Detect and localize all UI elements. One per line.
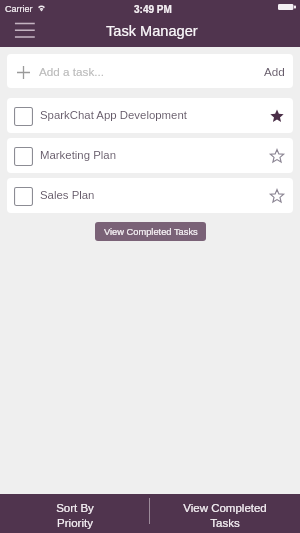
- button[interactable]: Add: [253, 54, 293, 88]
- staticText: Carrier: [5, 4, 33, 14]
- button[interactable]: Toggle task complete: [14, 107, 33, 126]
- button[interactable]: View Completed Tasks: [150, 494, 300, 533]
- button[interactable]: Open navigation menu: [9, 18, 40, 42]
- staticText: View Completed Tasks: [183, 502, 267, 529]
- button[interactable]: Toggle task complete: [7, 98, 293, 133]
- button[interactable]: Mark as priority: [268, 187, 286, 205]
- button[interactable]: Toggle task complete: [14, 187, 33, 206]
- button[interactable]: Sort By Priority: [0, 494, 149, 533]
- staticText: Task Manager: [106, 23, 198, 39]
- button[interactable]: Unmark as priority: [268, 107, 286, 125]
- staticText: Add: [264, 65, 285, 78]
- button[interactable]: Toggle task complete: [7, 178, 293, 213]
- staticText: Sort By Priority: [56, 502, 94, 529]
- button[interactable]: Toggle task complete: [14, 147, 33, 166]
- button[interactable]: Mark as priority: [268, 147, 286, 165]
- staticText: SparkChat App Development: [40, 109, 187, 122]
- button[interactable]: Add task: [17, 66, 30, 79]
- staticText: Sales Plan: [40, 189, 95, 202]
- staticText: Add a task...: [39, 65, 104, 78]
- button[interactable]: View Completed Tasks: [95, 222, 206, 241]
- staticText: 3:49 PM: [134, 4, 172, 15]
- button[interactable]: Toggle task complete: [7, 138, 293, 173]
- staticText: View Completed Tasks: [104, 227, 198, 237]
- staticText: Marketing Plan: [40, 149, 116, 162]
